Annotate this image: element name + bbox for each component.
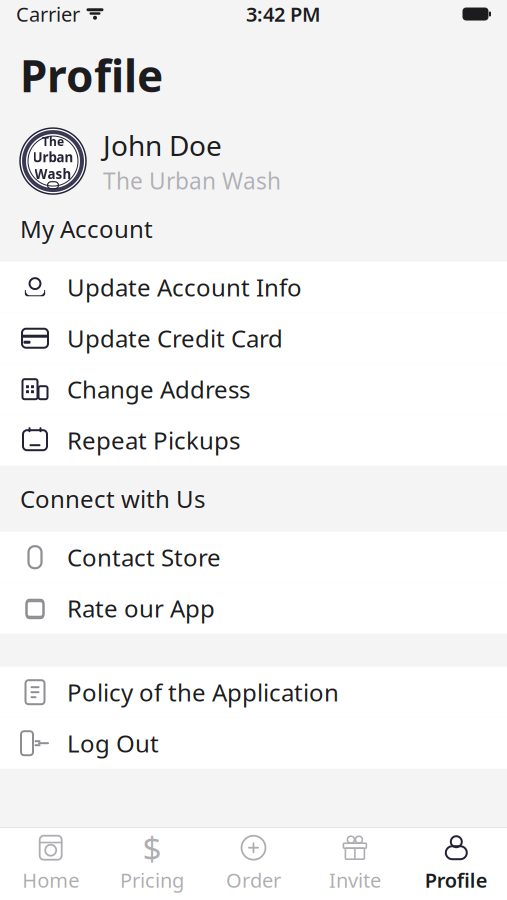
staticText: Rate our App — [67, 592, 215, 624]
button[interactable]: Contact Store — [0, 532, 507, 583]
button[interactable]: Invite — [304, 828, 406, 900]
button[interactable]: Update Credit Card — [0, 313, 507, 364]
staticText: Policy of the Application — [67, 676, 339, 708]
button[interactable]: Change Address — [0, 364, 507, 415]
button[interactable]: Profile — [406, 828, 507, 900]
button[interactable]: Repeat Pickups — [0, 415, 507, 466]
staticText: Profile — [20, 46, 163, 104]
staticText: Invite — [329, 867, 381, 893]
staticText: Order — [226, 867, 281, 893]
staticText: John Doe — [103, 126, 222, 164]
staticText: Update Credit Card — [67, 322, 283, 354]
staticText: Update Account Info — [67, 271, 302, 303]
staticText: Pricing — [120, 867, 184, 893]
button[interactable]: Home — [0, 828, 101, 900]
button[interactable]: $ — [101, 828, 203, 900]
staticText: My Account — [20, 213, 153, 245]
staticText: Profile — [425, 867, 488, 893]
staticText: Urban — [32, 148, 73, 166]
staticText: Connect with Us — [20, 483, 205, 515]
staticText: The Urban Wash — [103, 166, 281, 196]
staticText: Home — [22, 867, 79, 893]
staticText: Log Out — [67, 727, 159, 759]
staticText: The — [42, 133, 64, 149]
button[interactable]: Log Out — [0, 718, 507, 769]
staticText: Contact Store — [67, 541, 221, 573]
staticText: Carrier — [16, 1, 80, 27]
staticText: Wash — [34, 165, 71, 183]
staticText: 3:42 PM — [246, 1, 321, 27]
staticText: Change Address — [67, 373, 250, 405]
button[interactable]: Order — [203, 828, 304, 900]
button[interactable]: Rate our App — [0, 583, 507, 634]
button[interactable]: Policy of the Application — [0, 667, 507, 718]
staticText: Repeat Pickups — [67, 424, 240, 456]
button[interactable]: Update Account Info — [0, 262, 507, 313]
staticText: $ — [143, 826, 162, 870]
